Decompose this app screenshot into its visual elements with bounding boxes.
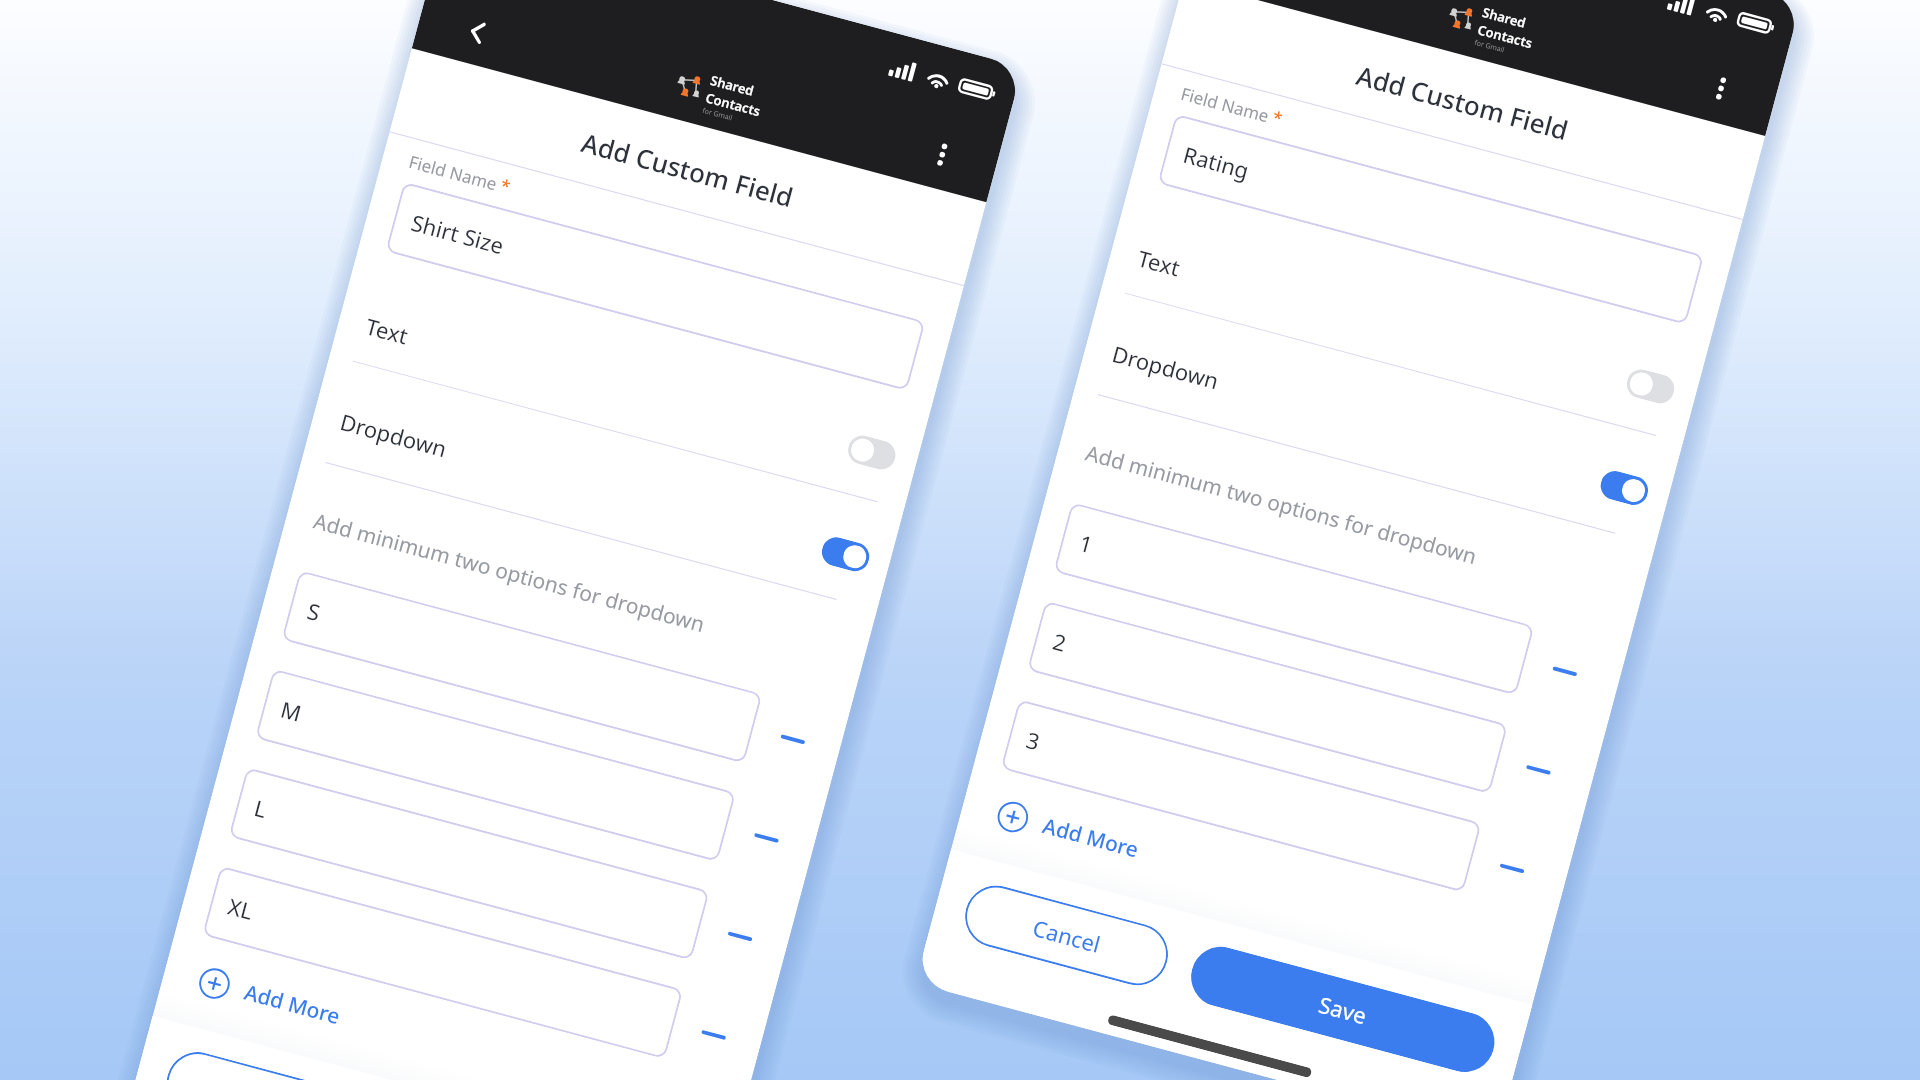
button[interactable]: Switch off (1624, 366, 1677, 407)
button[interactable]: Cancel (958, 879, 1175, 992)
staticText: for Gmail (1473, 38, 1506, 55)
staticText: Add More (241, 978, 343, 1031)
button[interactable]: 2 (1027, 601, 1508, 794)
button[interactable]: Back (454, 9, 498, 53)
button[interactable]: Switch on (1597, 468, 1651, 508)
staticText: Add minimum two options for dropdown (310, 507, 708, 639)
staticText: Shared (708, 71, 757, 100)
staticText: Text (363, 310, 412, 351)
button[interactable]: Remove option (1517, 752, 1560, 787)
button[interactable]: Remove option (692, 1017, 735, 1052)
staticText: Field Name (406, 150, 499, 195)
staticText: Add Custom Field (1353, 57, 1572, 147)
staticText: Add Custom Field (578, 124, 798, 214)
button[interactable]: Add More (994, 798, 1142, 865)
staticText: M (278, 693, 305, 728)
staticText: Add minimum two options for dropdown (1082, 439, 1480, 571)
button[interactable]: Switch off (845, 432, 899, 473)
staticText: Dropdown (1109, 338, 1222, 395)
staticText: L (251, 792, 271, 824)
button[interactable]: 1 (1053, 502, 1535, 696)
button[interactable]: Shirt Size (385, 182, 925, 391)
staticText: Shirt Size (408, 207, 508, 260)
staticText: Add More (1039, 811, 1142, 865)
staticText: S (304, 595, 324, 627)
button[interactable]: XL (202, 866, 683, 1059)
button[interactable]: More options (920, 132, 964, 176)
staticText: Contacts (704, 88, 763, 120)
staticText: Cancel (231, 1079, 306, 1080)
staticText: Field Name (1178, 82, 1271, 127)
button[interactable]: L (228, 767, 710, 961)
button[interactable]: More options (1699, 66, 1743, 110)
button[interactable]: Rating (1157, 114, 1704, 325)
staticText: XL (225, 891, 257, 926)
staticText: 1 (1076, 527, 1096, 559)
staticText: Shared (1480, 3, 1529, 32)
staticText: Dropdown (337, 406, 450, 463)
button[interactable]: M (255, 669, 736, 862)
staticText: 3 (1023, 724, 1044, 756)
staticText: Contacts (1476, 20, 1535, 52)
button[interactable]: Save (1184, 940, 1501, 1079)
button[interactable]: Switch on (819, 534, 872, 574)
button[interactable]: Remove option (1490, 851, 1534, 886)
staticText: Save (1316, 989, 1371, 1030)
button[interactable]: S (281, 570, 763, 764)
button[interactable]: Remove option (771, 722, 814, 757)
button[interactable]: 3 (1000, 699, 1482, 893)
button[interactable]: Cancel (160, 1045, 377, 1080)
staticText: * (1266, 104, 1285, 130)
button[interactable]: Remove option (745, 820, 788, 855)
staticText: 2 (1050, 625, 1070, 658)
staticText: * (494, 172, 513, 198)
button[interactable]: Remove option (1543, 654, 1586, 689)
staticText: Rating (1180, 139, 1253, 185)
button[interactable]: Remove option (718, 919, 762, 954)
staticText: Text (1135, 242, 1184, 283)
button[interactable]: Add More (195, 965, 344, 1032)
staticText: Cancel (1030, 912, 1104, 959)
staticText: for Gmail (701, 106, 734, 123)
